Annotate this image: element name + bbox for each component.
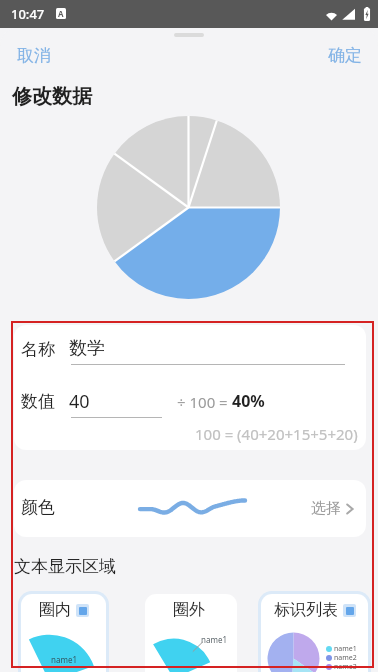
button[interactable]: 颜色: [14, 480, 366, 537]
other: Battery: [363, 7, 371, 21]
staticText: 数值: [21, 391, 55, 412]
staticText: 名称: [21, 339, 55, 360]
other: Cellular signal: [342, 8, 355, 20]
staticText: name1: [334, 644, 357, 653]
staticText: 选择: [311, 499, 341, 518]
staticText: 圈外: [173, 600, 205, 620]
staticText: 修改数据: [12, 84, 92, 109]
staticText: 确定: [328, 45, 362, 66]
staticText: name3: [334, 662, 357, 671]
staticText: ÷ 100 =: [177, 392, 232, 412]
button[interactable]: 标识列表: [261, 594, 368, 672]
staticText: 文本显示区域: [14, 556, 116, 577]
staticText: name1: [51, 654, 77, 665]
staticText: name1: [201, 634, 227, 645]
staticText: 标识列表: [274, 600, 338, 620]
staticText: 数学: [69, 337, 105, 360]
other: WiFi: [324, 7, 339, 21]
staticText: 100 = (40+20+15+5+20): [195, 424, 358, 444]
button[interactable]: 圈内: [21, 594, 106, 672]
button[interactable]: 圈外: [145, 594, 237, 672]
staticText: 取消: [17, 45, 51, 66]
staticText: 40: [69, 389, 90, 414]
staticText: name2: [334, 653, 357, 662]
staticText: 40%: [232, 390, 265, 412]
staticText: A: [58, 8, 64, 19]
button[interactable]: 取消: [11, 41, 57, 70]
staticText: 10:47: [11, 5, 45, 23]
button[interactable]: 确定: [322, 41, 368, 70]
staticText: 圈内: [39, 600, 71, 620]
staticText: 颜色: [21, 497, 55, 518]
